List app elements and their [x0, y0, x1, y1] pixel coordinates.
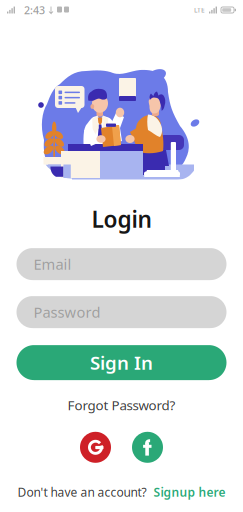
- button[interactable]: Signup here: [153, 484, 225, 500]
- button[interactable]: Sign in with Google: [80, 432, 111, 463]
- staticText: Signup here: [153, 484, 225, 500]
- staticText: Forgot Password?: [67, 396, 175, 414]
- button[interactable]: Forgot Password?: [59, 393, 183, 417]
- staticText: Sign In: [90, 350, 153, 375]
- staticText: Don't have an account?: [17, 484, 146, 500]
- staticText: 2:43: [24, 3, 45, 17]
- staticText: LTE: [194, 6, 205, 14]
- staticText: Email: [33, 254, 71, 274]
- button[interactable]: Sign In: [16, 345, 226, 380]
- staticText: Password: [33, 302, 100, 322]
- button[interactable]: Sign in with Facebook: [132, 432, 163, 463]
- staticText: Login: [91, 204, 151, 234]
